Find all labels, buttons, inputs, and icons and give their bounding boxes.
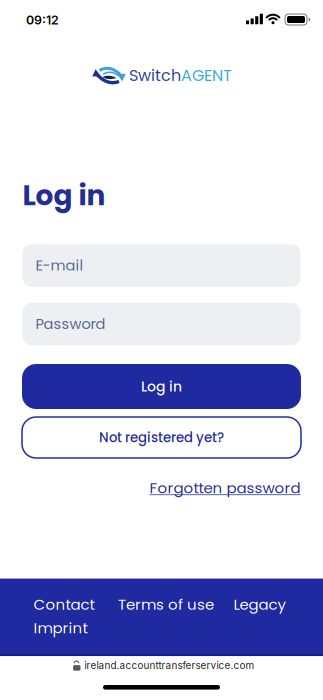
button[interactable]: Address bar — [72, 659, 254, 671]
staticText: Password — [35, 314, 105, 334]
button[interactable]: Legacy — [233, 594, 285, 615]
staticText: 09:12 — [26, 12, 59, 27]
staticText: ireland.accounttransferservice.com — [84, 659, 254, 671]
button[interactable]: Password — [22, 303, 300, 345]
staticText: Legacy — [233, 594, 285, 615]
button[interactable]: Forgotten password — [22, 477, 300, 498]
staticText: Terms of use — [118, 594, 214, 615]
staticText: Forgotten password — [149, 477, 300, 498]
staticText: Log in — [141, 377, 182, 396]
staticText: AGENT — [181, 64, 232, 87]
staticText: Switch — [129, 64, 181, 87]
button[interactable]: Contact — [33, 594, 94, 615]
staticText: E-mail — [35, 255, 83, 276]
button[interactable]: Terms of use — [118, 594, 214, 615]
staticText: Log in — [22, 176, 105, 215]
staticText: Imprint — [33, 617, 87, 638]
button[interactable]: Log in — [22, 364, 301, 409]
button[interactable]: E-mail — [22, 244, 300, 287]
staticText: Contact — [33, 594, 94, 615]
button[interactable]: Not registered yet? — [22, 417, 301, 458]
button[interactable]: Imprint — [33, 617, 87, 638]
staticText: Not registered yet? — [99, 428, 224, 447]
